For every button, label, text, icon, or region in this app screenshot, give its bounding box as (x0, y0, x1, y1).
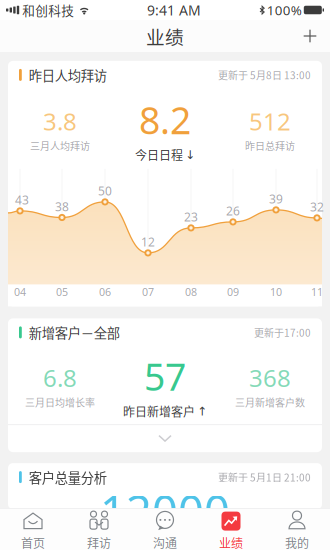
staticText: 12 (141, 234, 155, 250)
staticText: 57 (144, 351, 186, 402)
staticText: 昨日总拜访 (245, 138, 295, 153)
staticText: 04 (14, 285, 26, 299)
staticText: 07 (142, 285, 154, 299)
staticText: 昨日新增客户 (123, 403, 195, 420)
staticText: 6.8 (43, 361, 77, 394)
staticText: 9:41 AM (147, 0, 201, 20)
staticText: ↓ (185, 148, 195, 162)
staticText: 业绩 (146, 22, 184, 49)
staticText: 10 (270, 285, 282, 299)
staticText: 43 (15, 192, 29, 208)
staticText: 08 (185, 285, 197, 299)
staticText: 更新于17:00 (254, 325, 311, 340)
staticText: 今日日程 (135, 146, 183, 163)
staticText: 512 (249, 105, 291, 137)
staticText: 368 (249, 361, 291, 394)
staticText: ↑ (197, 404, 207, 418)
staticText: 05 (56, 285, 68, 299)
staticText: 3.8 (43, 105, 77, 137)
staticText: 昨日人均拜访 (29, 65, 107, 84)
staticText: 100% (267, 1, 302, 19)
button[interactable]: 我的 (264, 509, 330, 550)
button[interactable]: Add (290, 20, 330, 52)
staticText: 23 (184, 209, 198, 225)
staticText: 三月日均增长率 (25, 395, 95, 409)
staticText: 和创科技 (22, 1, 74, 19)
staticText: 32 (310, 199, 324, 215)
staticText: 首页 (21, 534, 45, 550)
button[interactable]: 拜访 (66, 509, 132, 550)
staticText: 更新于 5月8日 13:00 (218, 68, 311, 82)
staticText: 沟通 (153, 534, 177, 550)
staticText: 新增客户－全部 (29, 323, 120, 342)
staticText: 三月新增客户数 (235, 395, 305, 409)
staticText: 11 (311, 285, 323, 299)
staticText: 09 (227, 285, 239, 299)
staticText: 50 (98, 183, 112, 199)
staticText: 更新于 5月1日 21:00 (218, 470, 311, 484)
staticText: 38 (55, 198, 69, 215)
button[interactable]: 首页 (0, 509, 66, 550)
staticText: 客户总量分析 (29, 467, 107, 487)
staticText: 我的 (285, 534, 309, 550)
staticText: 8.2 (139, 94, 191, 145)
staticText: 12000 (100, 480, 230, 542)
button[interactable]: 业绩 (198, 509, 264, 550)
staticText: 三月人均拜访 (30, 138, 90, 153)
button[interactable]: 沟通 (132, 509, 198, 550)
staticText: 39 (269, 191, 283, 207)
staticText: 26 (226, 203, 240, 219)
staticText: 06 (99, 285, 111, 299)
staticText: 业绩 (219, 534, 243, 550)
staticText: 拜访 (87, 534, 111, 550)
